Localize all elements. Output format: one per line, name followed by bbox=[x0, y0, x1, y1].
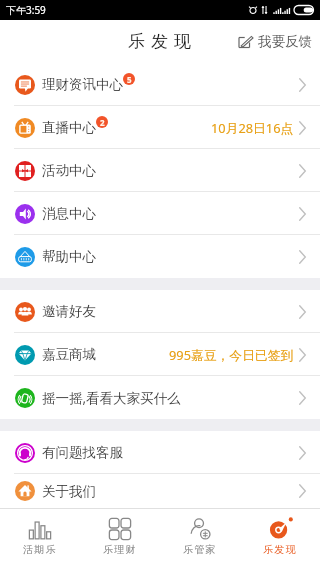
staticText: 消息中心 bbox=[42, 205, 96, 222]
staticText: 2 bbox=[100, 117, 105, 128]
button[interactable]: 理财资讯中心 bbox=[0, 63, 320, 106]
button[interactable]: 邀请好友 bbox=[0, 290, 320, 333]
staticText: 乐管家 bbox=[183, 543, 217, 556]
button[interactable]: 帮助中心 bbox=[0, 235, 320, 278]
staticText: 5 bbox=[127, 74, 132, 85]
button[interactable]: 有问题找客服 bbox=[0, 431, 320, 474]
button[interactable]: 消息中心 bbox=[0, 192, 320, 235]
staticText: 关于我们 bbox=[42, 483, 96, 500]
staticText: 我要反馈 bbox=[258, 33, 312, 50]
staticText: 嘉豆商城 bbox=[42, 346, 96, 363]
staticText: 摇一摇,看看大家买什么 bbox=[42, 389, 181, 407]
staticText: 帮助中心 bbox=[42, 248, 96, 265]
button[interactable]: 活动中心 bbox=[0, 149, 320, 192]
button[interactable]: 关于我们 bbox=[0, 474, 320, 508]
staticText: 乐发现 bbox=[263, 543, 297, 556]
button[interactable]: 直播中心 bbox=[0, 106, 320, 149]
staticText: 995嘉豆，今日已签到 bbox=[169, 346, 294, 363]
button[interactable]: 活期乐 bbox=[0, 509, 80, 569]
staticText: 邀请好友 bbox=[42, 303, 96, 320]
button[interactable]: 嘉豆商城 bbox=[0, 333, 320, 376]
button[interactable]: 乐管家 bbox=[160, 509, 240, 569]
staticText: 有问题找客服 bbox=[42, 444, 123, 461]
staticText: 直播中心 bbox=[42, 119, 96, 136]
staticText: 理财资讯中心 bbox=[42, 76, 123, 93]
staticText: 活期乐 bbox=[23, 543, 57, 556]
button[interactable]: 乐发现 bbox=[240, 509, 320, 569]
staticText: 乐 发 现 bbox=[128, 29, 192, 52]
staticText: 活动中心 bbox=[42, 162, 96, 179]
button[interactable]: 乐理财 bbox=[80, 509, 160, 569]
staticText: 下午3:59 bbox=[6, 3, 46, 17]
staticText: 10月28日16点 bbox=[211, 119, 294, 136]
staticText: 乐理财 bbox=[103, 543, 137, 556]
button[interactable]: 摇一摇,看看大家买什么 bbox=[0, 376, 320, 419]
button[interactable]: 我要反馈 bbox=[238, 33, 312, 50]
